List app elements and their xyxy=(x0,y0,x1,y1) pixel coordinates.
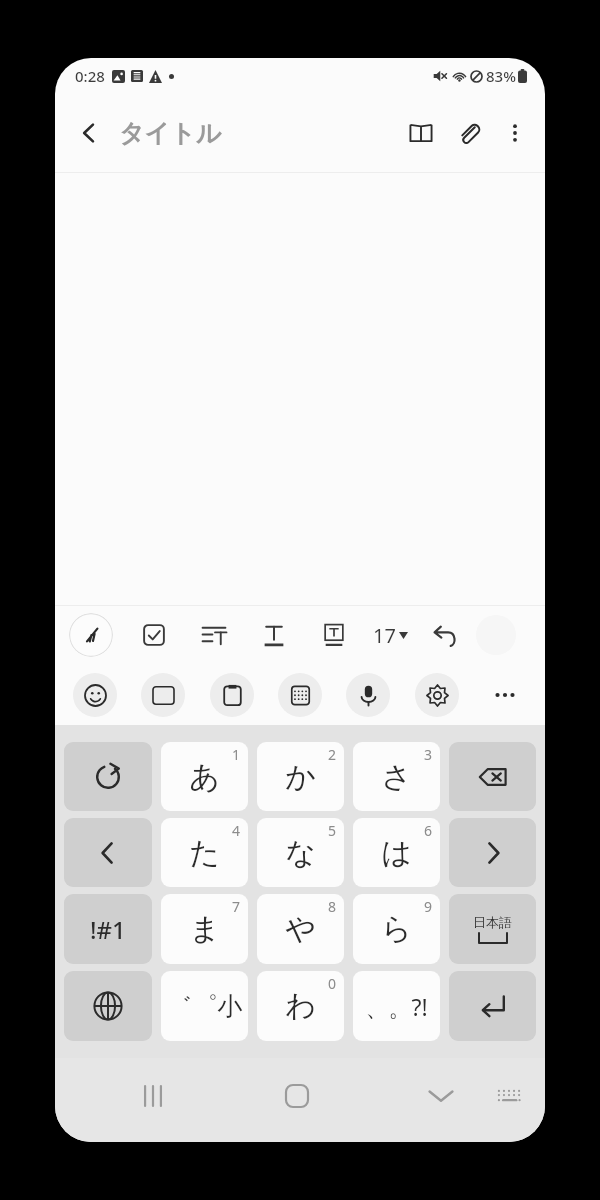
staticText: 4 xyxy=(232,821,241,840)
button[interactable]: ま xyxy=(161,894,248,964)
staticText: か xyxy=(285,758,316,796)
button[interactable]: 日本語 xyxy=(449,894,536,964)
button[interactable]: Back xyxy=(65,109,113,157)
staticText: 6 xyxy=(424,821,433,840)
button[interactable]: Home xyxy=(269,1068,325,1124)
button[interactable]: Indent xyxy=(197,618,231,652)
button[interactable]: た xyxy=(161,818,248,887)
button[interactable]: Undo xyxy=(428,618,462,652)
staticText: ま xyxy=(189,910,220,948)
staticText: 2 xyxy=(328,745,337,764)
button[interactable]: Delete xyxy=(449,742,536,811)
staticText: ゛゜小 xyxy=(166,991,243,1022)
button[interactable]: Move cursor right xyxy=(449,818,536,887)
button[interactable]: Switch character set xyxy=(64,742,152,811)
button[interactable]: あ xyxy=(161,742,248,811)
staticText: 、。?! xyxy=(365,991,428,1022)
button[interactable]: Reading view xyxy=(397,109,445,157)
button[interactable]: Checklist xyxy=(137,618,171,652)
button[interactable]: Keyboard layout xyxy=(483,1070,535,1122)
button[interactable]: か xyxy=(257,742,344,811)
staticText: 8 xyxy=(328,897,337,916)
staticText: な xyxy=(285,834,316,872)
button[interactable]: Text box xyxy=(317,618,351,652)
button[interactable]: Emoji xyxy=(73,673,117,717)
staticText: !#1 xyxy=(90,913,126,946)
button[interactable]: 、。?! xyxy=(353,971,440,1041)
button[interactable]: Move cursor left xyxy=(64,818,152,887)
button[interactable]: Hide keyboard xyxy=(413,1068,469,1124)
staticText: ら xyxy=(381,910,412,948)
button[interactable]: Keyboard modes xyxy=(278,673,322,717)
staticText: 1 xyxy=(232,745,241,764)
staticText: 7 xyxy=(232,897,241,916)
staticText: 0:28 xyxy=(75,66,105,86)
staticText: 5 xyxy=(328,821,337,840)
staticText: タイトル xyxy=(119,118,222,149)
button[interactable]: Text format xyxy=(257,618,291,652)
button[interactable]: ら xyxy=(353,894,440,964)
staticText: 17 xyxy=(373,622,396,649)
button[interactable]: Change language xyxy=(64,971,152,1041)
staticText: 0 xyxy=(328,974,337,993)
staticText: 9 xyxy=(424,897,433,916)
button[interactable]: や xyxy=(257,894,344,964)
button[interactable]: More xyxy=(483,673,527,717)
button[interactable]: Attach xyxy=(445,109,493,157)
button[interactable]: Settings xyxy=(415,673,459,717)
button[interactable]: わ xyxy=(257,971,344,1041)
button[interactable]: Voice input xyxy=(346,673,390,717)
staticText: た xyxy=(189,834,220,872)
button[interactable]: な xyxy=(257,818,344,887)
staticText: や xyxy=(285,910,316,948)
button[interactable]: Clipboard xyxy=(210,673,254,717)
button[interactable]: Enter xyxy=(449,971,536,1041)
staticText: さ xyxy=(381,758,412,796)
button[interactable]: !#1 xyxy=(64,894,152,964)
staticText: 日本語 xyxy=(473,914,512,930)
button[interactable]: さ xyxy=(353,742,440,811)
button[interactable]: ゛゜小 xyxy=(161,971,248,1041)
button[interactable]: Recents xyxy=(125,1068,181,1124)
staticText: 3 xyxy=(424,745,433,764)
staticText: あ xyxy=(189,758,220,796)
staticText: わ xyxy=(285,987,316,1025)
staticText: は xyxy=(381,834,412,872)
staticText: 83% xyxy=(486,66,516,86)
button[interactable]: More options xyxy=(493,111,537,155)
button[interactable]: は xyxy=(353,818,440,887)
button[interactable]: Symbols xyxy=(141,673,185,717)
button[interactable]: Handwriting xyxy=(69,613,113,657)
button[interactable]: 17 xyxy=(369,616,412,655)
